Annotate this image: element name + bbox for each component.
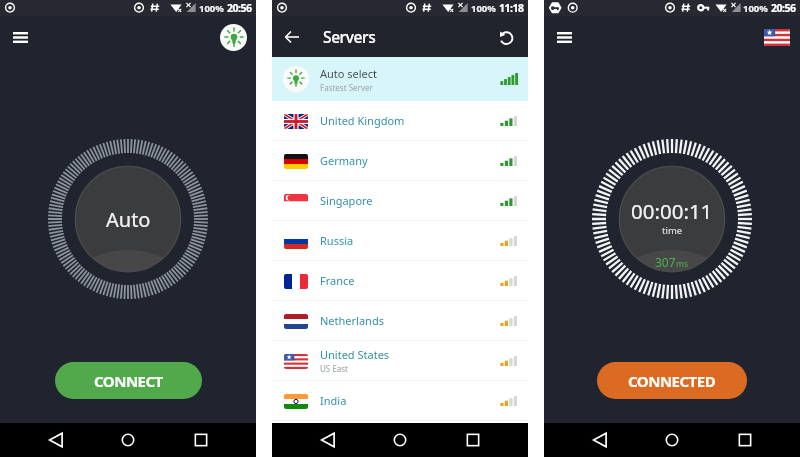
staticText: 100% xyxy=(199,2,224,15)
button[interactable]: Netherlands xyxy=(272,301,528,341)
staticText: 100% xyxy=(743,2,768,15)
button[interactable]: Selected server xyxy=(764,29,790,46)
staticText: Servers xyxy=(323,26,376,47)
staticText: United Kingdom xyxy=(320,113,405,128)
staticText: France xyxy=(320,273,355,288)
button[interactable]: India xyxy=(272,381,528,421)
button[interactable]: Back xyxy=(311,423,345,457)
staticText: Auto xyxy=(106,206,151,233)
button[interactable]: Back xyxy=(39,423,73,457)
button[interactable]: Home xyxy=(655,423,689,457)
staticText: 00:00:11 xyxy=(631,197,713,225)
button[interactable]: Russia xyxy=(272,221,528,261)
button[interactable]: CONNECTED xyxy=(597,362,747,399)
staticText: Germany xyxy=(320,153,368,168)
staticText: time xyxy=(662,224,683,237)
staticText: 20:56 xyxy=(227,1,252,15)
button[interactable]: Singapore xyxy=(272,181,528,221)
staticText: CONNECT xyxy=(94,371,163,391)
button[interactable]: Back xyxy=(279,24,305,50)
button[interactable]: Home xyxy=(111,423,145,457)
staticText: 20:56 xyxy=(771,1,796,15)
button[interactable]: CONNECT xyxy=(55,362,202,399)
button[interactable]: Auto select server xyxy=(220,24,247,51)
staticText: 11:18 xyxy=(499,1,524,15)
button[interactable]: Recents xyxy=(728,423,762,457)
button[interactable]: Recents xyxy=(456,423,490,457)
staticText: India xyxy=(320,393,347,408)
staticText: Russia xyxy=(320,233,354,248)
staticText: Fastest Server xyxy=(320,82,373,93)
staticText: CONNECTED xyxy=(628,371,716,391)
staticText: 100% xyxy=(471,2,496,15)
button[interactable]: Menu xyxy=(6,23,34,51)
button[interactable]: Recents xyxy=(184,423,218,457)
staticText: Singapore xyxy=(320,193,373,208)
button[interactable]: United Kingdom xyxy=(272,101,528,141)
staticText: 307 xyxy=(655,254,676,270)
button[interactable]: Menu xyxy=(550,23,578,51)
staticText: Netherlands xyxy=(320,313,384,328)
button[interactable]: Home xyxy=(383,423,417,457)
staticText: US East xyxy=(320,363,348,374)
button[interactable]: Refresh xyxy=(494,25,518,49)
button[interactable]: Auto select xyxy=(272,57,528,101)
button[interactable]: Back xyxy=(583,423,617,457)
staticText: Auto select xyxy=(320,66,378,81)
staticText: United States xyxy=(320,347,390,362)
button[interactable]: United States xyxy=(272,341,528,381)
staticText: ms xyxy=(676,258,689,270)
button[interactable]: France xyxy=(272,261,528,301)
button[interactable]: Germany xyxy=(272,141,528,181)
